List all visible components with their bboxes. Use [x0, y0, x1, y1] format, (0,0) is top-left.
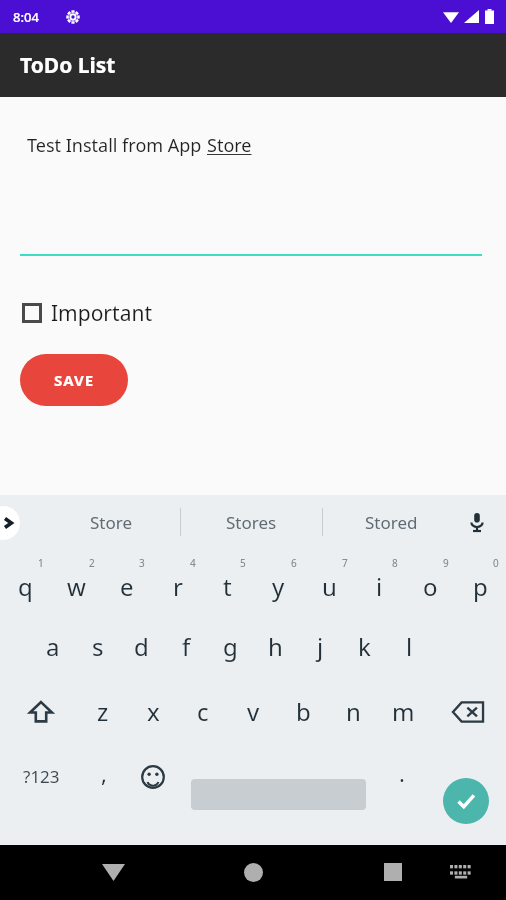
staticText: Stored	[365, 511, 418, 534]
staticText: Important	[51, 299, 152, 328]
staticText: .	[399, 758, 405, 788]
staticText: Store	[90, 511, 133, 534]
staticText: 2	[89, 556, 95, 570]
staticText: s	[92, 630, 104, 663]
staticText: h	[268, 630, 283, 663]
button[interactable]: SAVE	[20, 354, 128, 406]
button[interactable]: n	[328, 680, 378, 743]
staticText: d	[134, 630, 149, 663]
button[interactable]: g	[208, 615, 253, 678]
staticText: g	[223, 630, 238, 663]
button[interactable]: .	[380, 745, 424, 808]
staticText: y	[272, 570, 285, 603]
staticText: u	[322, 570, 337, 603]
button[interactable]: Stored	[336, 495, 446, 550]
staticText: 8:04	[13, 8, 39, 26]
button[interactable]: z	[78, 680, 128, 743]
staticText: i	[376, 570, 383, 603]
staticText: e	[120, 570, 134, 603]
button[interactable]: Important	[22, 293, 152, 333]
button[interactable]: c	[178, 680, 228, 743]
button[interactable]: Emoji	[131, 745, 175, 808]
staticText: b	[296, 695, 311, 728]
button[interactable]: f	[164, 615, 209, 678]
button[interactable]: m	[378, 680, 428, 743]
button[interactable]: Enter	[443, 778, 489, 824]
button[interactable]: h	[253, 615, 298, 678]
staticText: f	[182, 630, 191, 663]
button[interactable]: ?123	[8, 745, 74, 808]
staticText: j	[317, 630, 324, 663]
button[interactable]: Shift	[14, 680, 68, 743]
button[interactable]: Switch keyboard	[442, 855, 480, 889]
staticText: w	[67, 570, 86, 603]
button[interactable]: Recents	[372, 855, 414, 889]
button[interactable]: v	[228, 680, 278, 743]
staticText: t	[223, 570, 232, 603]
staticText: Stores	[226, 511, 277, 534]
button[interactable]: a	[30, 615, 75, 678]
button[interactable]: Store	[56, 495, 166, 550]
button[interactable]: ,	[82, 745, 126, 808]
staticText: l	[406, 630, 413, 663]
staticText: Test Install from App	[27, 133, 207, 158]
staticText: z	[97, 695, 109, 728]
button[interactable]: w	[51, 550, 102, 613]
staticText: k	[358, 630, 371, 663]
staticText: 3	[139, 556, 145, 570]
staticText: ?123	[23, 765, 60, 788]
staticText: x	[147, 695, 160, 728]
staticText: o	[423, 570, 438, 603]
staticText: v	[247, 695, 260, 728]
button[interactable]: Stores	[196, 495, 306, 550]
button[interactable]: x	[128, 680, 178, 743]
staticText: a	[46, 630, 60, 663]
staticText: p	[473, 570, 488, 603]
staticText: n	[346, 695, 361, 728]
button[interactable]: o	[405, 550, 456, 613]
button[interactable]: i	[354, 550, 405, 613]
button[interactable]: t	[202, 550, 253, 613]
button[interactable]: Backspace	[440, 680, 496, 743]
staticText: q	[18, 570, 33, 603]
staticText: ,	[101, 758, 107, 788]
button[interactable]: b	[278, 680, 328, 743]
button[interactable]: u	[304, 550, 355, 613]
button[interactable]: q	[0, 550, 51, 613]
staticText: 1	[38, 556, 44, 570]
button[interactable]: Home	[232, 855, 274, 889]
staticText: ToDo List	[20, 51, 116, 80]
button[interactable]: y	[253, 550, 304, 613]
button[interactable]: p	[455, 550, 506, 613]
button[interactable]: Back	[92, 855, 134, 889]
staticText: 7	[342, 556, 348, 570]
button[interactable]: Test Install from App	[20, 125, 486, 165]
staticText: 0	[493, 556, 499, 570]
button[interactable]: j	[298, 615, 343, 678]
staticText: SAVE	[54, 370, 95, 390]
button[interactable]: r	[152, 550, 203, 613]
button[interactable]: d	[119, 615, 164, 678]
staticText: 9	[443, 556, 449, 570]
staticText: r	[173, 570, 183, 603]
button[interactable]: k	[342, 615, 387, 678]
button[interactable]: Expand suggestions	[0, 506, 20, 540]
staticText: 8	[392, 556, 398, 570]
staticText: 4	[190, 556, 196, 570]
button[interactable]: l	[387, 615, 432, 678]
staticText: 6	[291, 556, 297, 570]
staticText: 5	[240, 556, 246, 570]
button[interactable]: s	[75, 615, 120, 678]
staticText: m	[392, 695, 415, 728]
staticText: c	[197, 695, 209, 728]
button[interactable]: e	[101, 550, 152, 613]
staticText: Store	[207, 133, 252, 158]
button[interactable]: Voice input	[460, 505, 494, 539]
